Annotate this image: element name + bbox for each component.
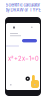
staticText: x²+2x−1=0 — [8, 55, 39, 62]
button[interactable]: Account — [31, 26, 33, 28]
staticText: Scientific calculator — [5, 2, 40, 7]
staticText: by DRAW or TYPE — [5, 7, 40, 12]
button[interactable] — [22, 39, 37, 42]
button[interactable]: Menu — [13, 26, 15, 28]
button[interactable]: Solve — [25, 76, 30, 81]
